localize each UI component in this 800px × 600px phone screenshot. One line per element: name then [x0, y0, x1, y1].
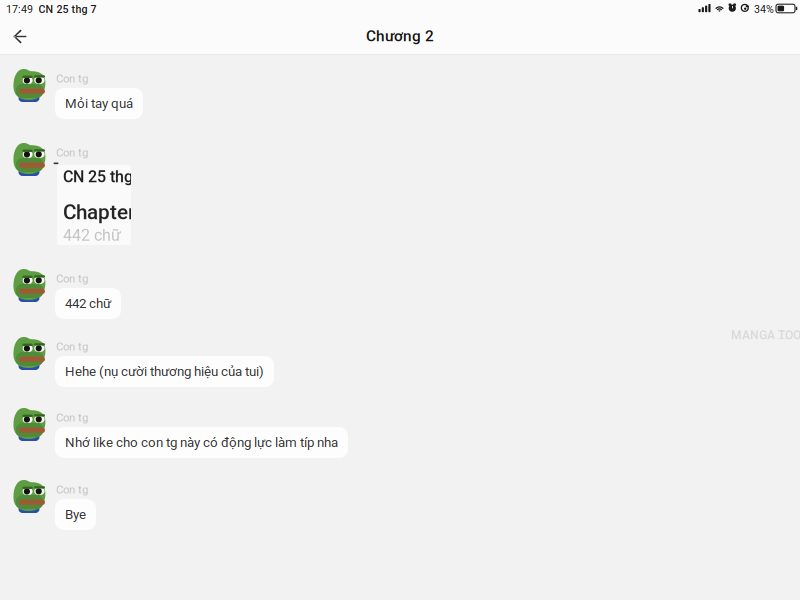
- staticText: Bye: [65, 507, 86, 522]
- staticText: Con tg: [56, 411, 88, 424]
- button[interactable]: Back: [0, 22, 42, 54]
- staticText: 442 chữ: [65, 296, 111, 311]
- staticText: Hehe (nụ cười thương hiệu của tui): [65, 364, 264, 379]
- staticText: CN 25 thg 7: [38, 3, 96, 15]
- staticText: Mỏi tay quá: [65, 96, 133, 111]
- staticText: 442 chữ: [63, 226, 121, 245]
- staticText: Con tg: [56, 146, 88, 159]
- staticText: ~~: [777, 333, 787, 342]
- staticText: Con tg: [56, 340, 88, 353]
- staticText: CN 25 thg 7: [63, 167, 146, 186]
- staticText: Nhớ like cho con tg này có động lực làm …: [65, 435, 338, 450]
- staticText: 34%: [754, 3, 774, 15]
- staticText: 17:49: [6, 3, 33, 15]
- staticText: Con tg: [56, 272, 88, 285]
- staticText: Chương 2: [366, 27, 434, 45]
- staticText: MANGA TOON: [731, 328, 800, 342]
- staticText: Chapter 2: [63, 200, 152, 224]
- staticText: Con tg: [56, 72, 88, 85]
- staticText: Con tg: [56, 483, 88, 496]
